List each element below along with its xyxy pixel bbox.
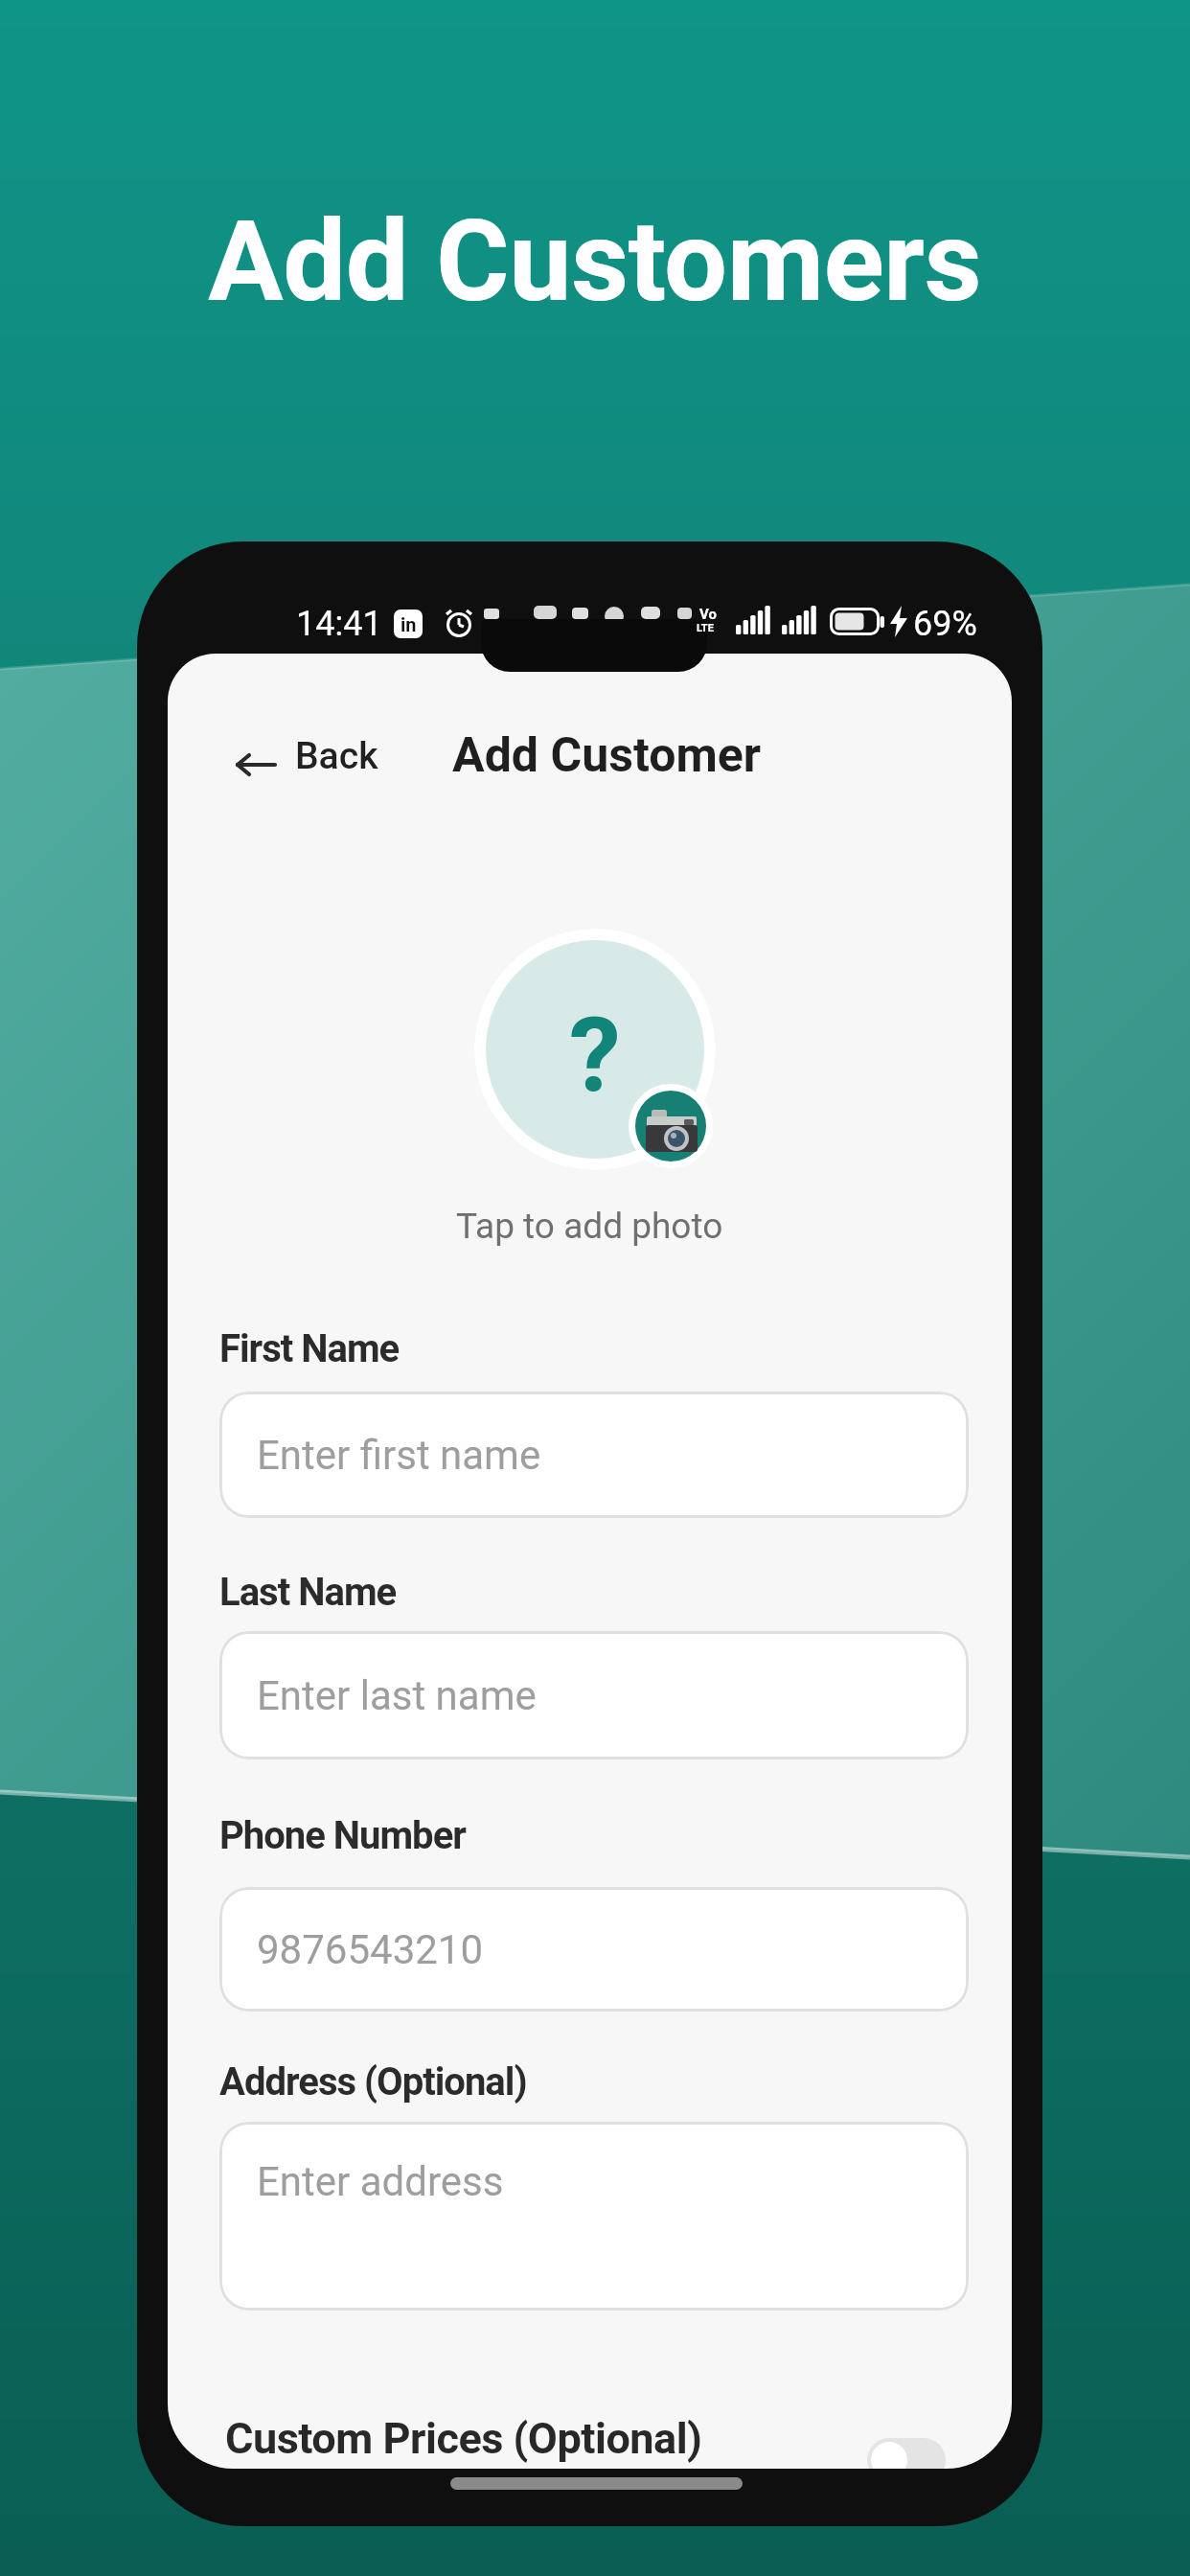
staticText: Address (Optional) bbox=[219, 2059, 527, 2104]
staticText: Add Customer bbox=[452, 727, 761, 784]
staticText: LTE bbox=[697, 622, 714, 634]
staticText: Enter first name bbox=[257, 1432, 541, 1479]
staticText: in bbox=[400, 613, 417, 635]
staticText: ? bbox=[569, 995, 621, 1116]
staticText: First Name bbox=[219, 1326, 400, 1371]
button[interactable] bbox=[867, 2438, 946, 2469]
staticText: Tap to add photo bbox=[456, 1206, 723, 1247]
button[interactable]: ? bbox=[474, 929, 716, 1170]
button[interactable]: 9876543210 bbox=[219, 1887, 969, 2012]
staticText: Back bbox=[295, 734, 378, 778]
staticText: Enter last name bbox=[257, 1672, 537, 1719]
staticText: Vo bbox=[699, 606, 717, 623]
staticText: Last Name bbox=[219, 1570, 397, 1615]
button[interactable]: Back bbox=[225, 728, 551, 797]
staticText: Custom Prices (Optional) bbox=[225, 2413, 702, 2464]
staticText: Add Customers bbox=[208, 195, 982, 327]
staticText: 69% bbox=[913, 604, 977, 644]
button[interactable]: Enter last name bbox=[219, 1631, 969, 1759]
staticText: 14:41 bbox=[296, 604, 382, 644]
button[interactable]: Enter address bbox=[219, 2122, 969, 2311]
staticText: Enter address bbox=[257, 2158, 504, 2205]
button[interactable]: Enter first name bbox=[219, 1391, 969, 1518]
staticText: 9876543210 bbox=[257, 1926, 484, 1973]
staticText: Phone Number bbox=[219, 1813, 466, 1858]
